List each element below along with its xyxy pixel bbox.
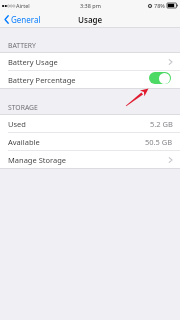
staticText: 5.2 GB	[150, 119, 173, 129]
staticText: 3:38 pm	[80, 2, 101, 9]
staticText: Available	[8, 137, 40, 147]
staticText: STORAGE	[8, 103, 38, 112]
staticText: Manage Storage	[8, 155, 67, 165]
staticText: General	[11, 14, 41, 25]
staticText: Battery Percentage	[8, 75, 76, 85]
button[interactable]: Battery Percentage	[0, 71, 180, 88]
button[interactable]: Battery Percentage toggle	[149, 72, 171, 84]
button[interactable]: Battery Usage	[0, 53, 180, 70]
staticText: Battery Usage	[8, 57, 58, 67]
staticText: BATTERY	[8, 41, 36, 50]
staticText: 50.5 GB	[145, 137, 173, 147]
staticText: Used	[8, 119, 26, 129]
button[interactable]: Available	[0, 133, 180, 150]
button[interactable]: Used	[0, 115, 180, 132]
staticText: Usage	[78, 14, 103, 25]
staticText: Airtel	[16, 2, 30, 9]
button[interactable]: General	[4, 14, 41, 25]
staticText: 78%	[154, 2, 165, 9]
button[interactable]: Manage Storage	[0, 151, 180, 168]
